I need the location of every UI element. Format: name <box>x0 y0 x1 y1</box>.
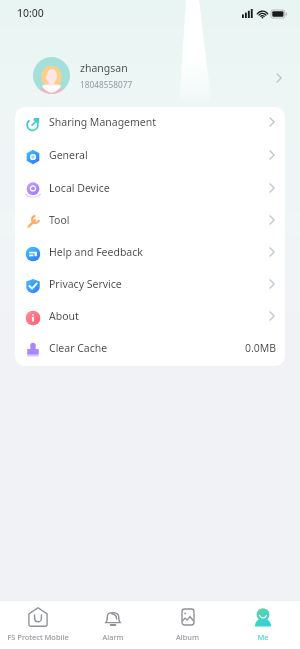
staticText: General <box>49 148 88 162</box>
staticText: Help and Feedback <box>49 245 143 259</box>
staticText: Album <box>176 632 199 642</box>
button[interactable]: Me <box>225 601 300 649</box>
button[interactable]: Local Device <box>15 173 285 206</box>
staticText: 10:00 <box>17 6 44 20</box>
button[interactable]: zhangsan <box>0 52 300 99</box>
staticText: Alarm <box>102 632 124 642</box>
button[interactable]: Tool <box>15 206 285 238</box>
staticText: Tool <box>49 213 70 227</box>
button[interactable]: FS Protect Mobile <box>0 601 75 649</box>
staticText: Clear Cache <box>49 341 108 355</box>
staticText: About <box>49 309 79 323</box>
button[interactable]: Sharing Management <box>15 107 285 140</box>
staticText: Privacy Service <box>49 277 122 291</box>
button[interactable]: General <box>15 140 285 173</box>
button[interactable]: About <box>15 302 285 334</box>
button[interactable]: Help and Feedback <box>15 238 285 270</box>
staticText: Me <box>257 632 269 642</box>
staticText: Sharing Management <box>49 115 157 129</box>
staticText: zhangsan <box>80 61 128 75</box>
staticText: 18048558077 <box>80 79 133 90</box>
button[interactable]: Alarm <box>75 601 150 649</box>
staticText: 0.0MB <box>245 341 277 355</box>
staticText: FS Protect Mobile <box>7 632 69 642</box>
button[interactable]: Clear Cache <box>15 334 285 366</box>
staticText: Local Device <box>49 181 110 195</box>
button[interactable]: Album <box>150 601 225 649</box>
button[interactable]: Privacy Service <box>15 270 285 302</box>
